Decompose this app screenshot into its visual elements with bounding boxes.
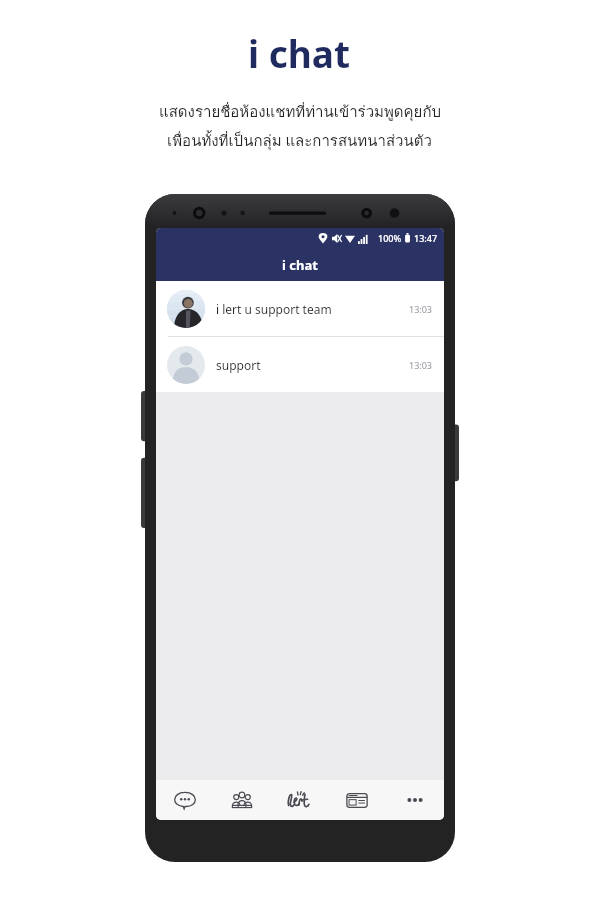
- button[interactable]: Chats: [156, 780, 213, 820]
- staticText: 13:47: [414, 232, 438, 244]
- button[interactable]: i lert u support team: [156, 281, 444, 336]
- button[interactable]: More: [386, 780, 444, 820]
- staticText: i chat: [282, 256, 318, 274]
- staticText: แสดงรายชื่อห้องแชทที่ท่านเข้าร่วมพูดคุยก…: [159, 100, 441, 124]
- staticText: 13:03: [409, 359, 433, 371]
- staticText: i chat: [248, 28, 351, 78]
- button[interactable]: support: [156, 337, 444, 392]
- staticText: 100%: [378, 232, 402, 244]
- button[interactable]: Groups: [213, 780, 270, 820]
- staticText: support: [216, 357, 261, 373]
- button[interactable]: Lert: [270, 780, 328, 820]
- staticText: เพื่อนทั้งที่เป็นกลุ่ม และการสนทนาส่วนตั…: [167, 129, 432, 153]
- staticText: 13:03: [409, 303, 433, 315]
- staticText: i lert u support team: [216, 301, 332, 317]
- button[interactable]: News: [328, 780, 386, 820]
